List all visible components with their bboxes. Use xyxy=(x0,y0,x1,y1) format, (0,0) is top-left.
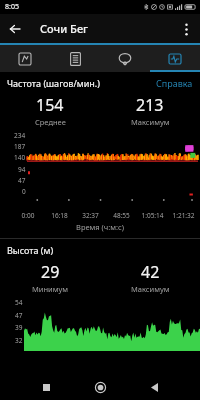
staticText: 1:05:14 xyxy=(137,211,168,220)
staticText: 42 xyxy=(141,261,160,283)
staticText: Частота (шагов/мин.) xyxy=(7,77,100,89)
button[interactable]: Map xyxy=(0,45,50,72)
staticText: 47 xyxy=(18,176,26,185)
staticText: 0 xyxy=(22,187,26,196)
staticText: 54 xyxy=(15,298,23,307)
staticText: 234 xyxy=(14,131,26,140)
staticText: 140 xyxy=(14,153,26,162)
staticText: Среднее xyxy=(35,117,66,127)
button[interactable]: Details xyxy=(50,45,100,72)
staticText: 0:00 xyxy=(12,211,44,220)
staticText: 47 xyxy=(15,311,23,320)
staticText: 32 xyxy=(15,336,23,345)
staticText: 48:55 xyxy=(106,211,137,220)
button[interactable]: Laps xyxy=(100,45,150,72)
staticText: 32:37 xyxy=(75,211,106,220)
staticText: Максимум xyxy=(131,117,170,127)
staticText: 39 xyxy=(15,323,23,332)
staticText: Справка xyxy=(156,77,193,89)
staticText: 29 xyxy=(41,261,60,283)
button[interactable]: Back xyxy=(4,18,26,40)
button[interactable]: Справка xyxy=(156,77,193,89)
button[interactable]: More options xyxy=(175,18,197,40)
staticText: Минимум xyxy=(32,284,69,294)
staticText: 154 xyxy=(36,94,64,116)
staticText: 94 xyxy=(18,165,26,174)
staticText: 1:21:32 xyxy=(168,211,199,220)
staticText: 213 xyxy=(136,94,164,116)
staticText: Максимум xyxy=(131,284,170,294)
button[interactable]: Home xyxy=(90,377,110,397)
button[interactable]: Charts xyxy=(150,45,200,72)
staticText: 16:18 xyxy=(44,211,75,220)
staticText: 187 xyxy=(14,142,26,151)
staticText: Сочи Бег xyxy=(40,21,89,36)
staticText: Время (ч:м:с) xyxy=(0,222,200,232)
button[interactable]: Recent apps xyxy=(36,377,56,397)
button[interactable]: Back xyxy=(144,377,164,397)
staticText: Высота (м) xyxy=(7,244,54,256)
staticText: 8:05 xyxy=(5,2,19,12)
